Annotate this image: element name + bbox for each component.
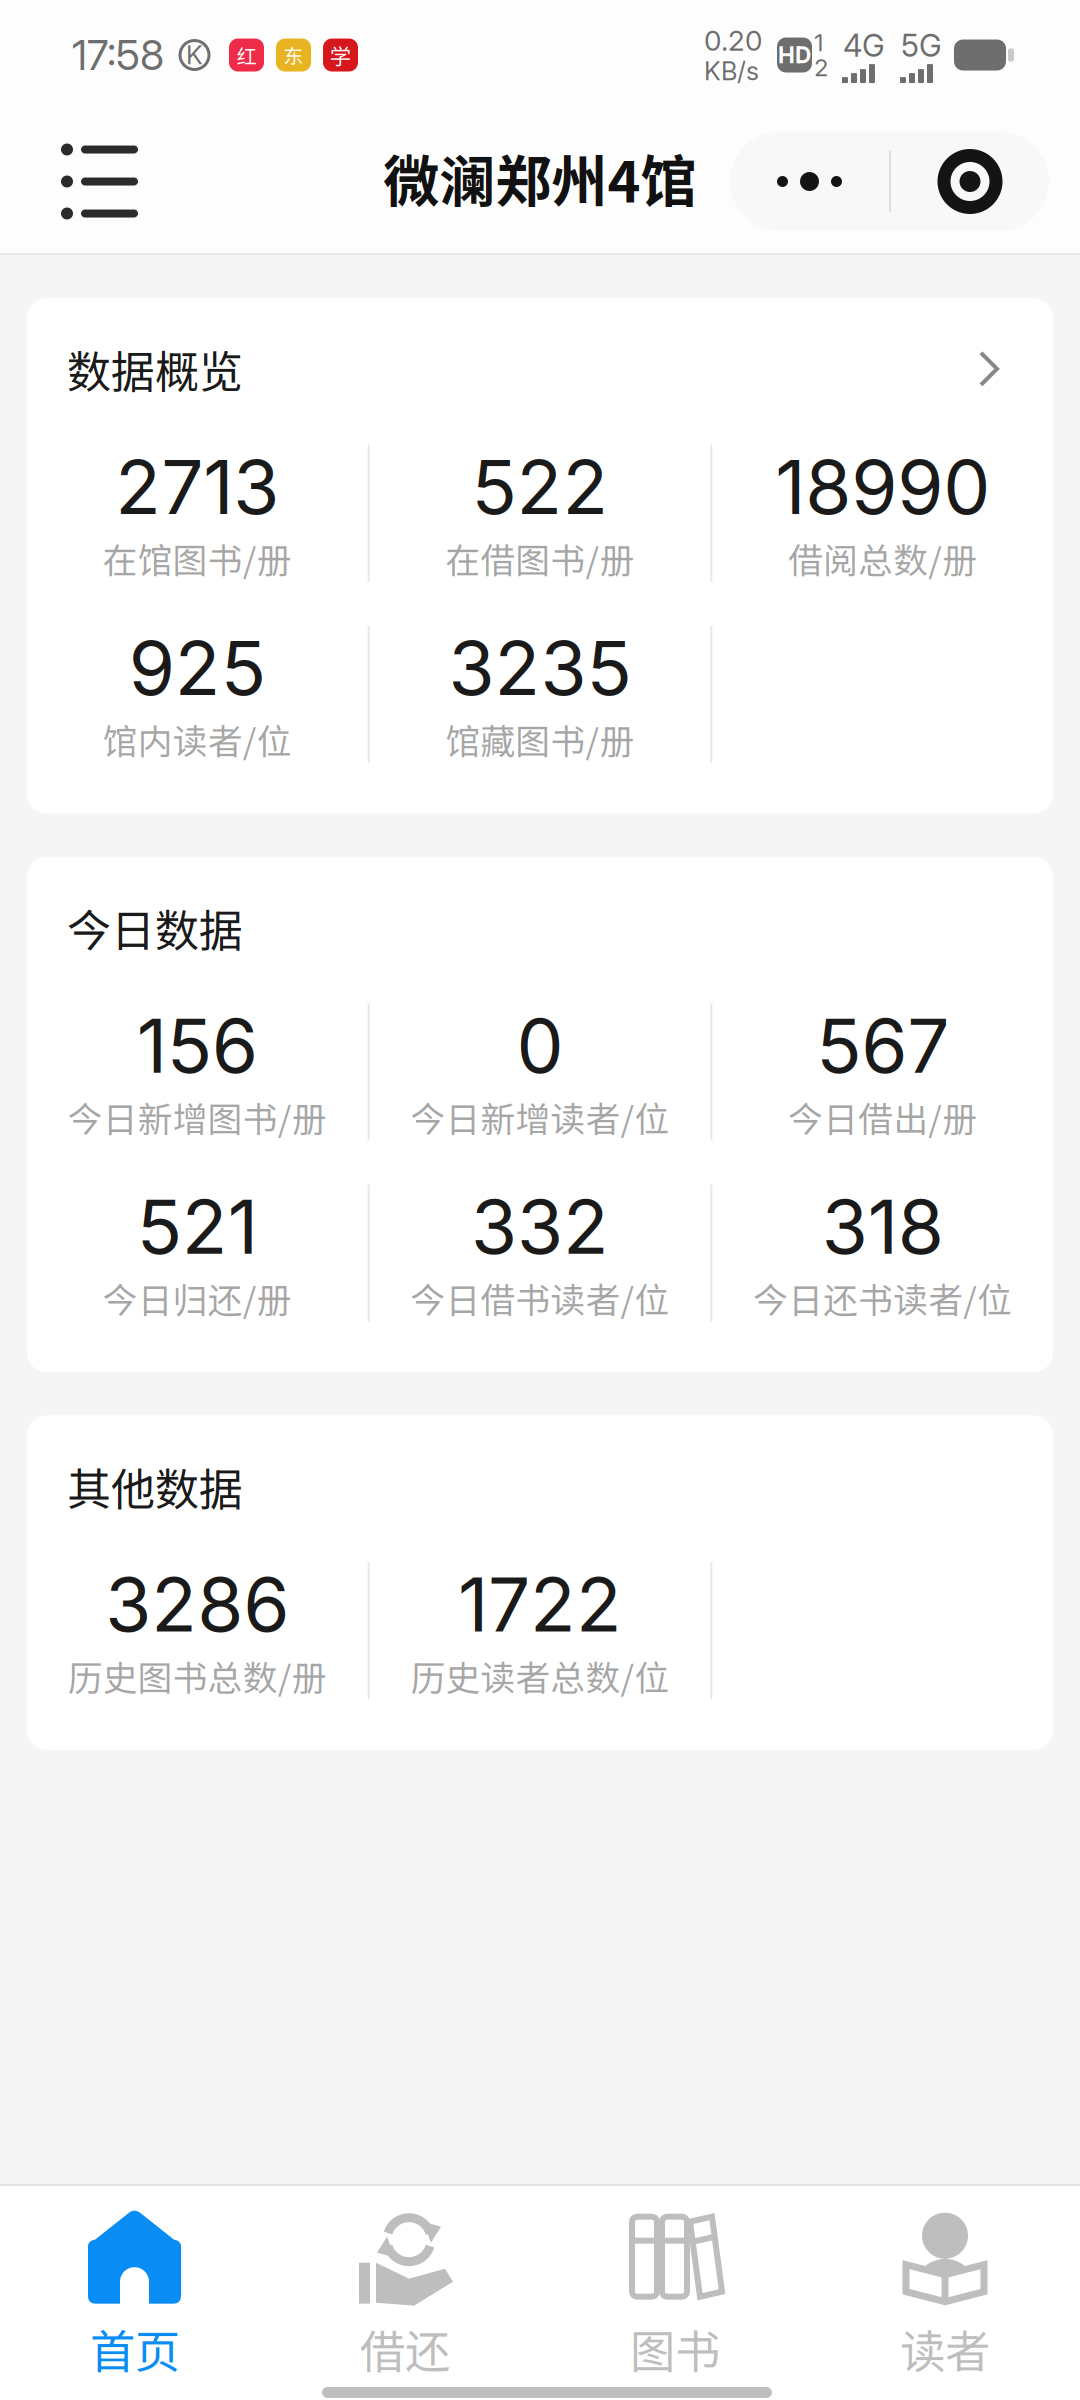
staticText: 332 [471,1181,609,1272]
staticText: 今日借出/册 [788,1092,977,1142]
staticText: 今日新增图书/册 [68,1092,327,1142]
staticText: 567 [816,1000,949,1091]
staticText: 微澜郑州4馆 [383,137,696,218]
staticText: 首页 [90,2316,180,2381]
staticText: 522 [471,442,608,532]
staticText: 馆内读者/位 [103,714,292,764]
button[interactable]: 读者 [810,2186,1080,2376]
staticText: 图书 [630,2316,720,2381]
staticText: 2 [814,53,828,82]
staticText: 2713 [115,442,279,532]
staticText: 历史读者总数/位 [410,1650,669,1701]
staticText: 历史图书总数/册 [68,1650,327,1701]
staticText: 4G [843,27,885,64]
staticText: 红 [236,40,256,69]
staticText: 今日数据 [67,896,243,959]
staticText: 今日新增读者/位 [410,1092,669,1142]
staticText: HD [778,41,811,69]
staticText: 1 [814,28,824,57]
staticText: 318 [822,1181,944,1272]
staticText: 5G [901,27,942,64]
staticText: 读者 [900,2316,990,2381]
staticText: 18990 [775,442,990,532]
staticText: 3286 [105,1559,289,1649]
button[interactable]: 数据概览 [27,298,1053,401]
staticText: 今日借书读者/位 [410,1273,669,1323]
button[interactable]: 菜单 [61,121,185,241]
staticText: 今日还书读者/位 [753,1273,1012,1323]
staticText: 在借图书/册 [445,533,634,583]
staticText: 数据概览 [67,337,243,401]
button[interactable]: 借还 [270,2186,540,2376]
staticText: 521 [137,1181,258,1272]
button[interactable]: 关闭 [891,132,1049,231]
staticText: KB/s [704,56,759,86]
staticText: 17:58 [72,30,164,80]
button[interactable]: 首页 [0,2186,270,2376]
staticText: 1722 [458,1559,622,1649]
staticText: 学 [330,40,351,70]
staticText: 925 [129,623,266,713]
staticText: 借阅总数/册 [788,533,977,583]
staticText: 156 [137,1000,258,1091]
staticText: 今日归还/册 [103,1273,292,1323]
staticText: 0 [516,1000,563,1091]
staticText: 借还 [360,2316,450,2381]
staticText: 在馆图书/册 [103,533,292,583]
staticText: K [186,40,203,70]
staticText: 0.20 [704,24,762,58]
staticText: 东 [283,40,303,69]
staticText: 其他数据 [67,1454,243,1518]
staticText: 3235 [448,623,631,713]
staticText: 馆藏图书/册 [445,714,634,764]
button[interactable]: 更多 [730,132,889,231]
button[interactable]: 图书 [540,2186,810,2376]
